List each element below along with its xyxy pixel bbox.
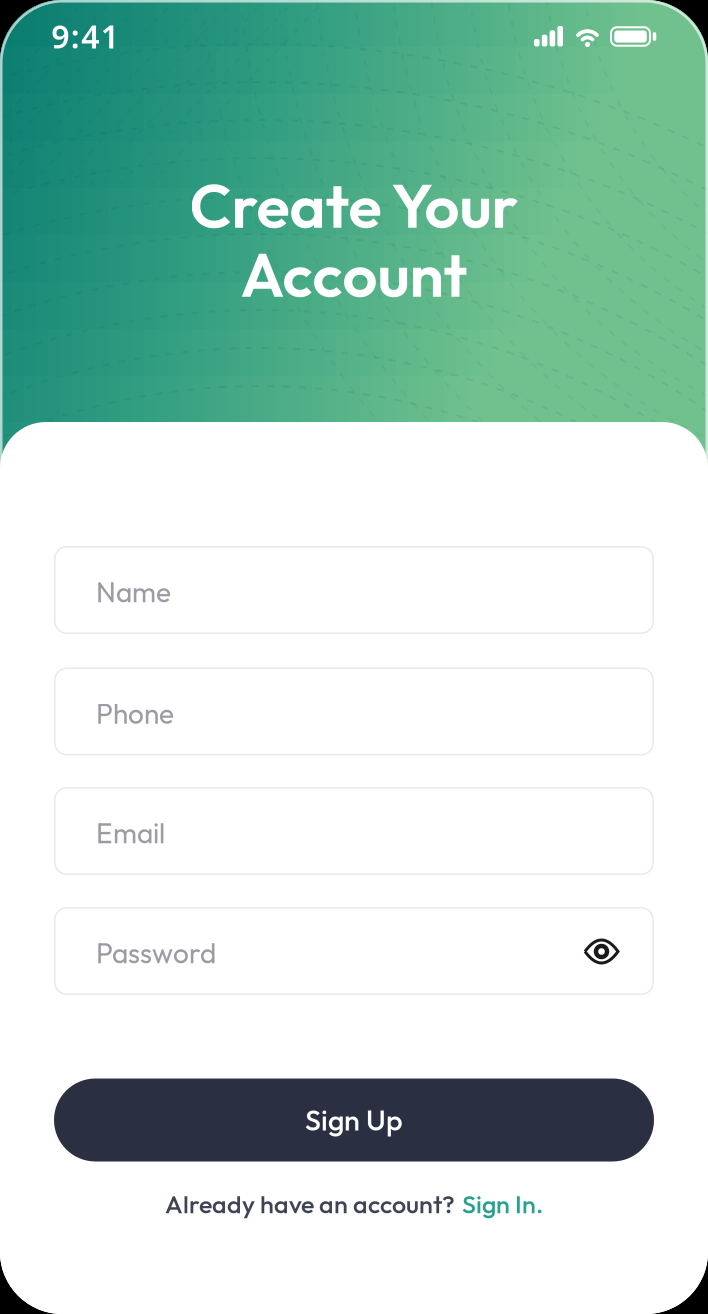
staticText: Email	[96, 815, 165, 851]
button[interactable]: Sign Up	[54, 1078, 654, 1161]
staticText: 9:41	[51, 15, 119, 57]
staticText: Password	[96, 935, 216, 971]
button[interactable]: Phone	[54, 667, 654, 755]
button[interactable]: Sign In.	[462, 1188, 543, 1220]
button[interactable]: Email	[54, 787, 654, 875]
staticText: Create Your	[189, 166, 518, 244]
staticText: Already have an account?	[165, 1188, 455, 1220]
button[interactable]: Name	[54, 546, 654, 634]
staticText: Sign In.	[462, 1188, 543, 1220]
staticText: Account	[240, 235, 467, 313]
button[interactable]: Show password	[579, 929, 623, 973]
staticText: Name	[96, 574, 171, 610]
staticText: Sign Up	[305, 1102, 403, 1138]
button[interactable]: Password	[54, 907, 654, 995]
staticText: Phone	[96, 696, 174, 731]
